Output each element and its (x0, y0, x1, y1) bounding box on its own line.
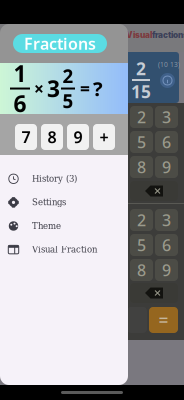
staticText: 2 (137, 209, 146, 231)
staticText: 5 (62, 88, 73, 113)
staticText: 3 (47, 73, 60, 103)
button[interactable]: 5 (130, 234, 153, 256)
button[interactable]: 2 (130, 209, 153, 231)
staticText: Settings (32, 197, 66, 207)
staticText: History (3) (32, 174, 77, 184)
staticText: fractions (152, 30, 184, 40)
staticText: 6 (162, 131, 171, 153)
button[interactable]: 6 (155, 234, 178, 256)
button[interactable]: 8 (130, 156, 153, 178)
staticText: 7 (21, 126, 30, 148)
staticText: × (34, 77, 44, 100)
staticText: 8 (47, 126, 56, 148)
staticText: Visual (126, 30, 152, 40)
staticText: 9 (162, 259, 171, 281)
staticText: 5 (137, 131, 146, 153)
button[interactable]: 8 (41, 124, 63, 150)
staticText: 3 (162, 106, 171, 128)
staticText: = (158, 308, 168, 331)
button[interactable]: 7 (15, 124, 37, 150)
staticText: = (80, 77, 90, 100)
button[interactable]: 3 (155, 106, 178, 128)
button[interactable]: + (93, 124, 115, 150)
staticText: 6 (13, 88, 26, 119)
staticText: 6 (162, 234, 171, 256)
button[interactable]: 9 (67, 124, 89, 150)
button[interactable]: 9 (155, 259, 178, 281)
staticText: Visual Fraction (32, 245, 97, 254)
staticText: 8 (137, 156, 146, 178)
staticText: 3 (162, 209, 171, 231)
staticText: ? (93, 75, 103, 102)
staticText: 15 (131, 80, 151, 103)
button[interactable]: 8 (130, 259, 153, 281)
button[interactable]: Delete (130, 181, 178, 201)
staticText: Theme (32, 221, 61, 231)
button[interactable]: 2 (130, 106, 153, 128)
staticText: 9 (73, 126, 82, 148)
button[interactable]: Delete (130, 283, 178, 303)
button[interactable]: = (149, 307, 178, 333)
staticText: 2 (62, 64, 73, 88)
staticText: 9 (162, 156, 171, 178)
button[interactable]: Theme (0, 214, 128, 238)
button[interactable]: Fractions (13, 34, 107, 53)
staticText: + (99, 126, 108, 148)
button[interactable]: 6 (155, 131, 178, 153)
button[interactable]: 3 (155, 209, 178, 231)
staticText: 1 (13, 58, 26, 88)
button[interactable]: 5 (130, 131, 153, 153)
button[interactable]: Settings (0, 191, 128, 214)
staticText: 8 (137, 259, 146, 281)
staticText: Fractions (24, 33, 96, 54)
staticText: 2 (137, 106, 146, 128)
staticText: 5 (137, 234, 146, 256)
button[interactable]: Visual Fraction (0, 238, 128, 261)
staticText: (10 13) (158, 60, 180, 69)
button[interactable]: History (3) (0, 167, 128, 191)
button[interactable] (127, 307, 147, 333)
staticText: 2 (136, 57, 146, 80)
button[interactable]: 9 (155, 156, 178, 178)
